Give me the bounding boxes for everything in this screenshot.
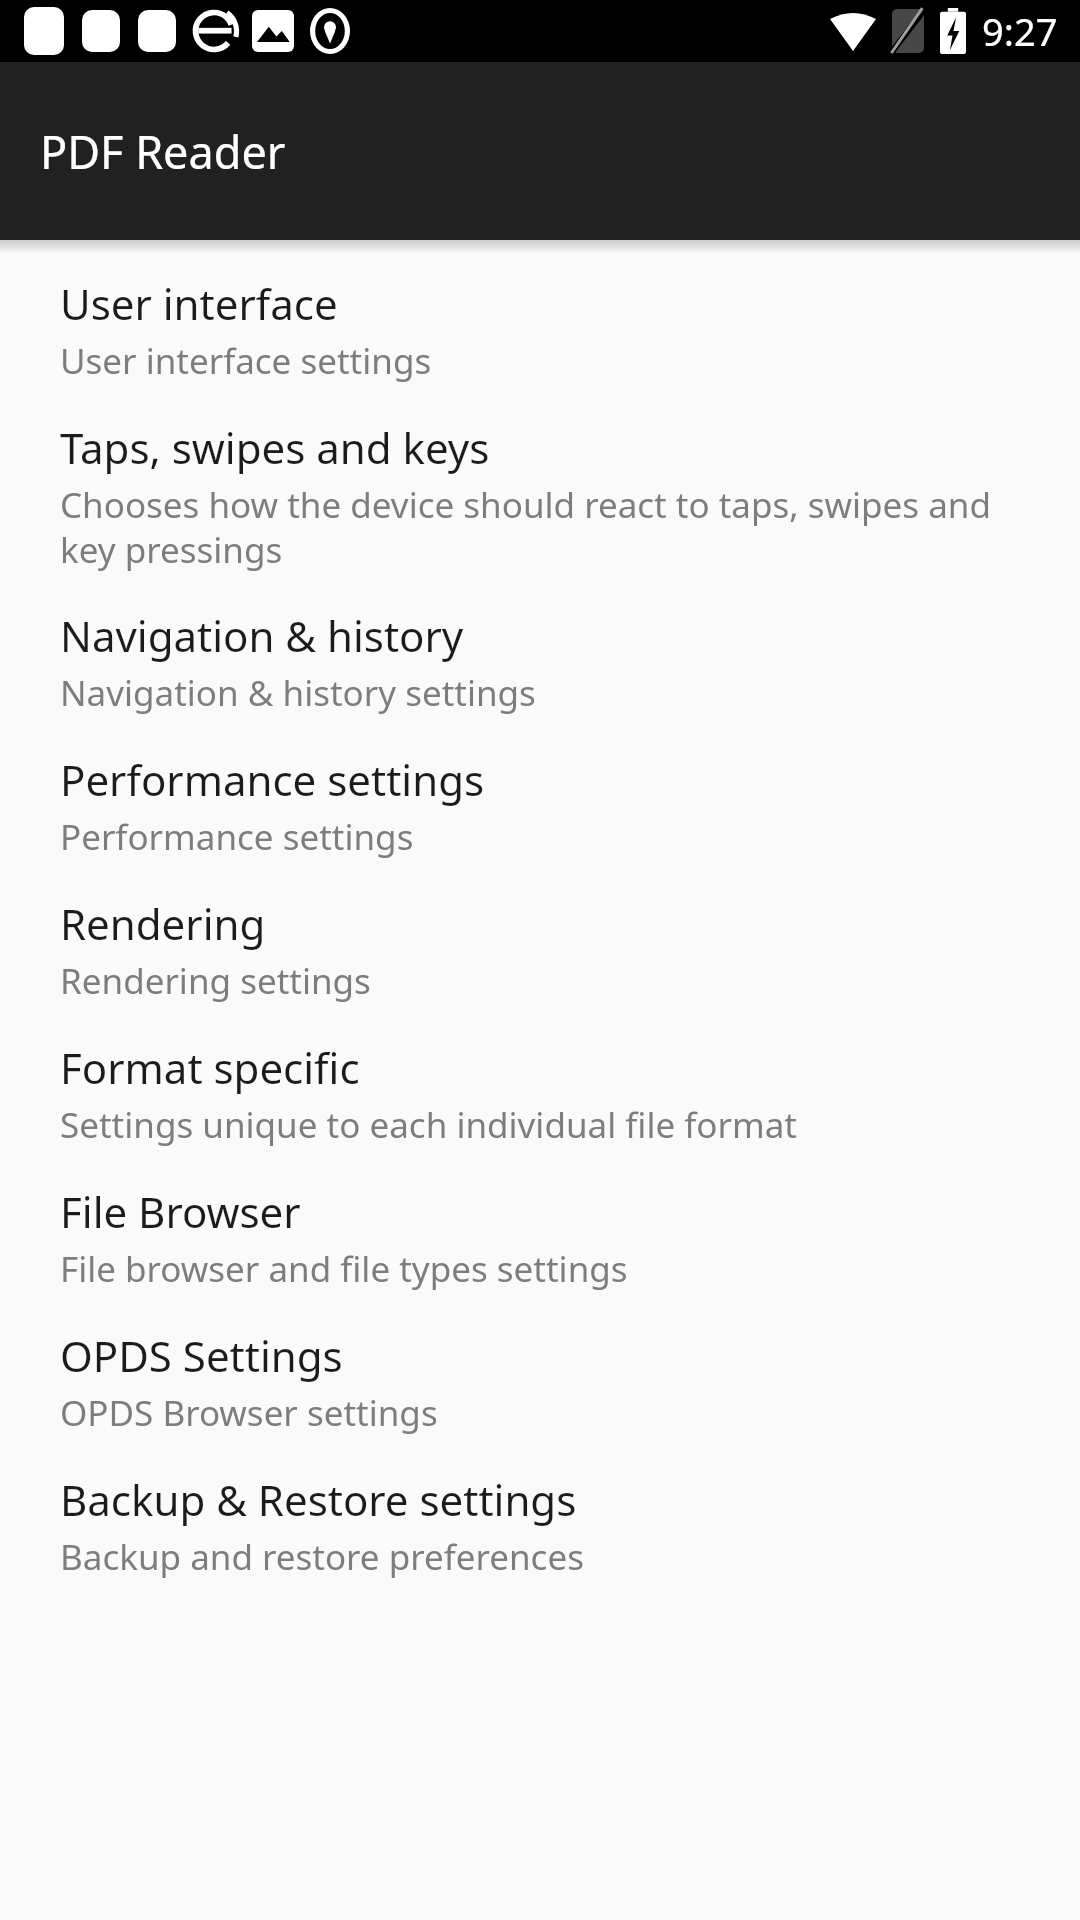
button[interactable]: OPDS Settings <box>0 1310 1080 1454</box>
staticText: PDF Reader <box>40 121 286 182</box>
staticText: 9:27 <box>982 5 1058 57</box>
staticText: Taps, swipes and keys <box>60 419 490 476</box>
staticText: User interface <box>60 275 338 332</box>
staticText: Rendering settings <box>60 957 371 1005</box>
other: Wi-Fi <box>830 11 876 51</box>
staticText: OPDS Browser settings <box>60 1389 438 1437</box>
button[interactable]: Rendering <box>0 878 1080 1022</box>
staticText: Navigation & history <box>60 607 464 664</box>
button[interactable]: Performance settings <box>0 734 1080 878</box>
staticText: Backup & Restore settings <box>60 1471 577 1528</box>
button[interactable]: Taps, swipes and keys <box>0 402 1080 590</box>
button[interactable]: Backup & Restore settings <box>0 1454 1080 1598</box>
staticText: Settings unique to each individual file … <box>60 1101 797 1149</box>
button[interactable]: User interface <box>0 258 1080 402</box>
button[interactable]: Format specific <box>0 1022 1080 1166</box>
staticText: Performance settings <box>60 751 485 808</box>
other: No SIM <box>892 9 924 53</box>
staticText: User interface settings <box>60 337 432 385</box>
other: Battery charging <box>940 8 966 54</box>
staticText: OPDS Settings <box>60 1327 343 1384</box>
staticText: Format specific <box>60 1039 360 1096</box>
staticText: File Browser <box>60 1183 301 1240</box>
staticText: Chooses how the device should react to t… <box>60 481 1030 573</box>
button[interactable]: File Browser <box>0 1166 1080 1310</box>
staticText: Navigation & history settings <box>60 669 536 717</box>
staticText: Performance settings <box>60 813 414 861</box>
staticText: File browser and file types settings <box>60 1245 628 1293</box>
button[interactable]: Navigation & history <box>0 590 1080 734</box>
staticText: Backup and restore preferences <box>60 1533 584 1581</box>
staticText: Rendering <box>60 895 266 952</box>
